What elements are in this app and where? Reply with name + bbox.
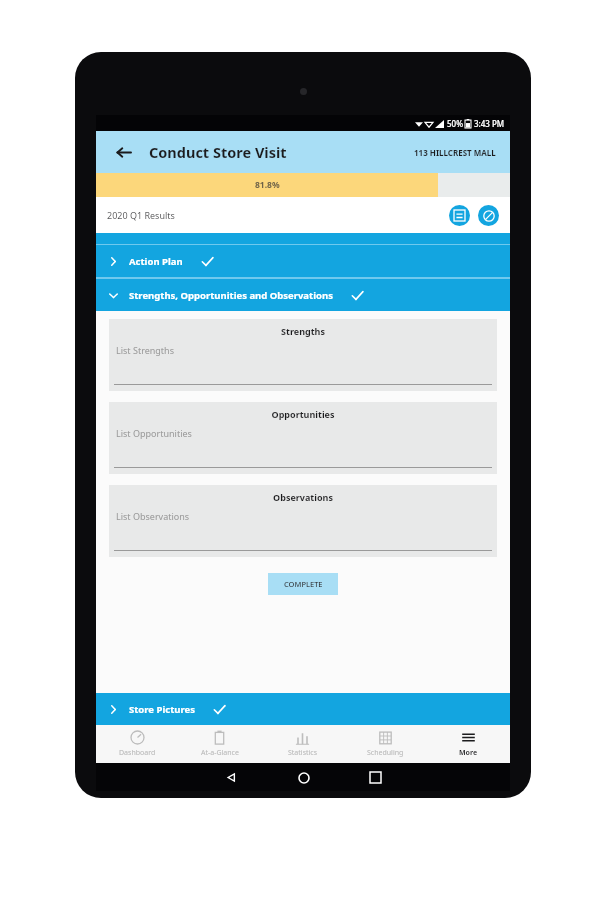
staticText: Action Plan — [129, 255, 183, 268]
button[interactable]: Scheduling — [344, 725, 427, 763]
button[interactable]: COMPLETE — [268, 573, 338, 595]
button[interactable]: At-a-Glance — [178, 725, 261, 763]
staticText: List Observations — [116, 510, 190, 522]
staticText: COMPLETE — [284, 579, 323, 589]
button[interactable]: Strengths, Opportunities and Observation… — [96, 279, 510, 311]
button[interactable]: Action Plan — [96, 245, 510, 277]
staticText: Statistics — [288, 748, 318, 758]
button[interactable]: More — [427, 725, 510, 763]
staticText: List Strengths — [116, 344, 174, 356]
button[interactable]: Save — [449, 205, 470, 226]
staticText: List Opportunities — [116, 427, 192, 439]
staticText: Conduct Store Visit — [149, 142, 287, 162]
staticText: 2020 Q1 Results — [107, 209, 175, 221]
button[interactable]: Cancel — [478, 205, 499, 226]
button[interactable]: Statistics — [261, 725, 344, 763]
staticText: 3:43 PM — [474, 118, 505, 129]
staticText: Opportunities — [109, 408, 497, 420]
staticText: Dashboard — [119, 748, 156, 758]
button[interactable]: Dashboard — [96, 725, 178, 763]
staticText: Strengths — [109, 325, 497, 337]
button[interactable]: Observations — [109, 485, 497, 557]
staticText: 81.8% — [255, 179, 280, 191]
staticText: At-a-Glance — [201, 748, 239, 758]
staticText: More — [459, 748, 478, 758]
button[interactable]: Opportunities — [109, 402, 497, 474]
button[interactable]: Back — [110, 139, 136, 165]
staticText: 113 HILLCREST MALL — [414, 147, 496, 158]
staticText: 50% — [447, 118, 463, 129]
button[interactable]: Store Pictures — [96, 693, 510, 725]
staticText: Store Pictures — [129, 703, 195, 716]
button[interactable]: Strengths — [109, 319, 497, 391]
staticText: Observations — [109, 491, 497, 503]
staticText: Scheduling — [367, 748, 404, 758]
staticText: Strengths, Opportunities and Observation… — [129, 289, 333, 302]
